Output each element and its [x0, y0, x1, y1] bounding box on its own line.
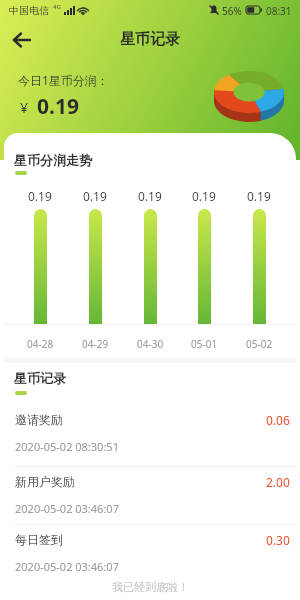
staticText: 0.19 — [28, 188, 52, 204]
staticText: 邀请奖励 — [15, 412, 63, 427]
staticText: 04-30 — [137, 337, 164, 351]
staticText: 2020-05-02 03:46:07 — [15, 501, 119, 516]
staticText: 56% — [222, 4, 242, 18]
staticText: ¥ — [20, 98, 29, 117]
staticText: 05-02 — [246, 337, 273, 351]
staticText: 0.19 — [192, 188, 216, 204]
staticText: 我已经到底啦！ — [112, 580, 189, 594]
staticText: 04-28 — [27, 337, 54, 351]
staticText: 08:31 — [266, 4, 292, 18]
staticText: 04-29 — [82, 337, 109, 351]
staticText: 星币记录 — [14, 370, 66, 386]
staticText: 2020-05-02 08:30:51 — [15, 439, 119, 454]
button[interactable]: 每日签到 — [0, 524, 300, 582]
staticText: 4G — [53, 3, 61, 11]
staticText: 0.19 — [37, 92, 79, 121]
button[interactable] — [12, 31, 32, 49]
staticText: 0.19 — [138, 188, 162, 204]
staticText: 星币分润走势 — [14, 152, 92, 168]
button[interactable]: 新用户奖励 — [0, 466, 300, 524]
staticText: 今日1星币分润： — [18, 72, 109, 88]
button[interactable]: 邀请奖励 — [0, 404, 300, 462]
staticText: 星币记录 — [120, 30, 180, 49]
staticText: 2.00 — [266, 474, 290, 490]
staticText: 0.19 — [247, 188, 271, 204]
staticText: 新用户奖励 — [15, 474, 75, 489]
staticText: 0.06 — [266, 412, 290, 428]
staticText: 0.30 — [266, 532, 290, 548]
staticText: 0.19 — [83, 188, 107, 204]
staticText: 中国电信 — [9, 4, 49, 17]
staticText: 2020-05-02 03:46:07 — [15, 559, 119, 574]
staticText: 每日签到 — [15, 532, 63, 547]
staticText: 05-01 — [191, 337, 218, 351]
